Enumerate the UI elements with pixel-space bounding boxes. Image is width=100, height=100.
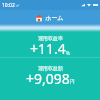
staticText: 運用収益額 <box>38 65 63 71</box>
staticText: +11.4 <box>30 39 66 58</box>
staticText: 円 <box>70 79 75 85</box>
staticText: ホーム <box>45 14 64 22</box>
staticText: +9,098 <box>26 69 70 88</box>
staticText: % <box>66 50 70 56</box>
staticText: 10:02 <box>2 2 15 9</box>
staticText: 運用収益率 <box>38 35 63 41</box>
button[interactable]: Home <box>35 14 43 22</box>
